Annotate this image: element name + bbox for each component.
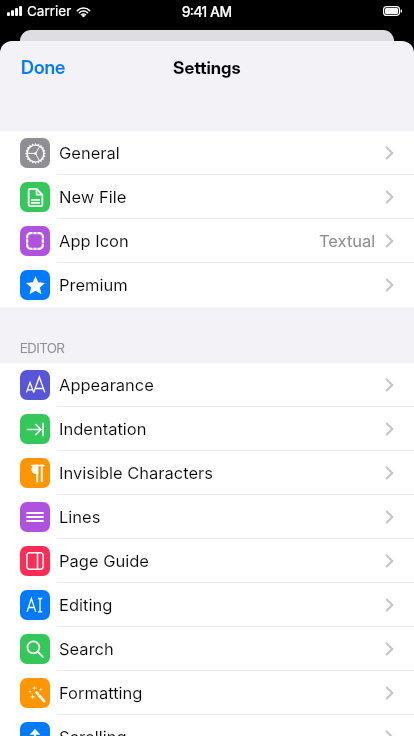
staticText: Lines	[59, 507, 101, 527]
button[interactable]: General	[0, 131, 414, 175]
staticText: 9:41 AM	[182, 3, 232, 20]
staticText: Page Guide	[59, 551, 149, 571]
staticText: Indentation	[59, 419, 147, 439]
staticText: Settings	[173, 57, 241, 78]
button[interactable]: Page Guide	[0, 539, 414, 583]
button[interactable]: Formatting	[0, 671, 414, 715]
staticText: Editing	[59, 595, 113, 615]
staticText: Premium	[59, 275, 128, 295]
staticText: New File	[59, 187, 127, 207]
button[interactable]: Done	[10, 51, 77, 83]
button[interactable]: Appearance	[0, 363, 414, 407]
button[interactable]: Indentation	[0, 407, 414, 451]
staticText: Scrolling	[59, 727, 127, 736]
staticText: Formatting	[59, 683, 143, 703]
staticText: Appearance	[59, 375, 154, 395]
staticText: Invisible Characters	[59, 463, 214, 483]
button[interactable]: Search	[0, 627, 414, 671]
staticText: General	[59, 143, 120, 163]
staticText: App Icon	[59, 231, 129, 251]
button[interactable]: New File	[0, 175, 414, 219]
staticText: Carrier	[27, 3, 72, 19]
button[interactable]: Scrolling	[0, 715, 414, 736]
button[interactable]: App Icon	[0, 219, 414, 263]
staticText: Textual	[319, 231, 376, 251]
button[interactable]: Invisible Characters	[0, 451, 414, 495]
button[interactable]: Premium	[0, 263, 414, 307]
staticText: EDITOR	[20, 340, 65, 356]
staticText: Done	[21, 56, 66, 78]
staticText: Search	[59, 639, 114, 659]
button[interactable]: Editing	[0, 583, 414, 627]
button[interactable]: Lines	[0, 495, 414, 539]
